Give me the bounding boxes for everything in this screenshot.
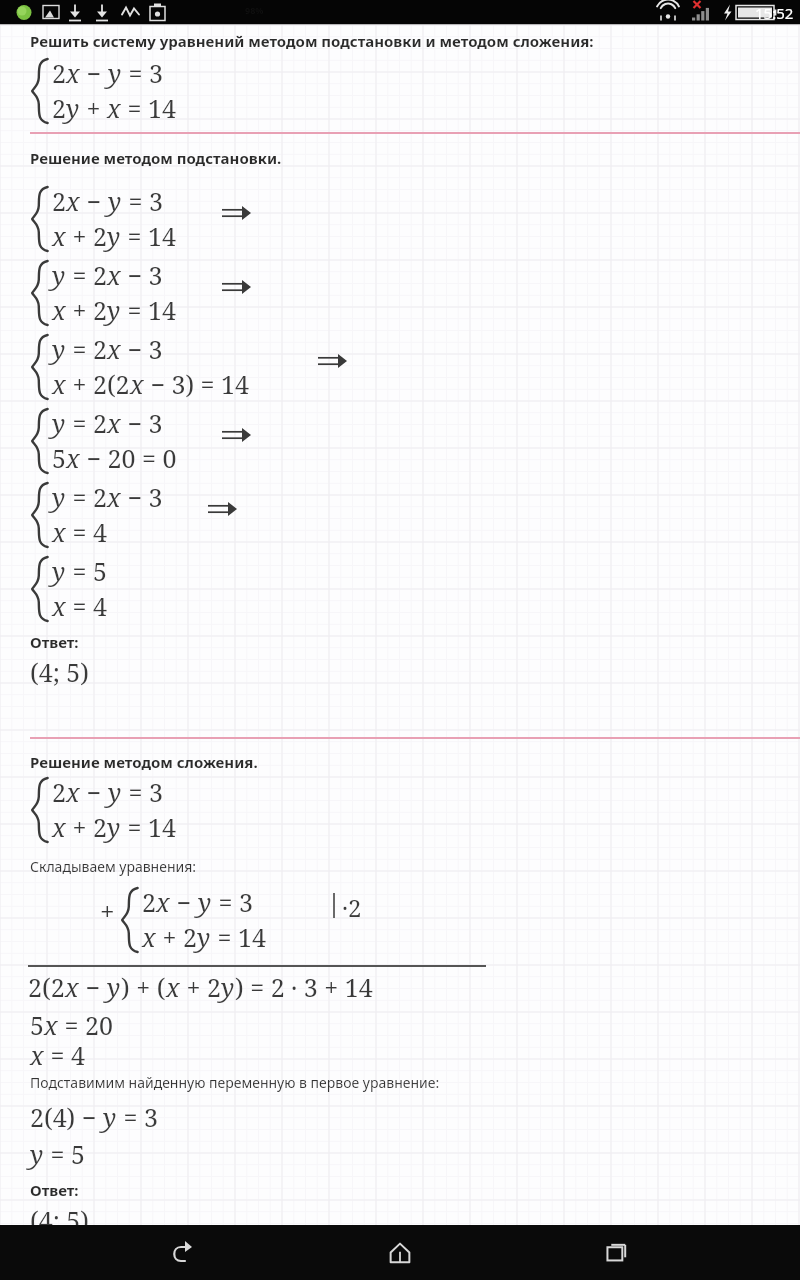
staticText: − bbox=[80, 56, 108, 90]
staticText: = 3 bbox=[122, 775, 163, 809]
staticText: y bbox=[197, 920, 211, 954]
staticText: y bbox=[107, 293, 121, 327]
staticText: Решить систему уравнений методом подстан… bbox=[30, 31, 594, 51]
staticText: y bbox=[108, 775, 122, 809]
staticText: y bbox=[52, 554, 66, 588]
staticText: + 2 bbox=[180, 970, 221, 1004]
staticText: y bbox=[108, 56, 122, 90]
staticText: y bbox=[30, 1137, 44, 1171]
staticText: + 2 bbox=[66, 293, 107, 327]
staticText: y bbox=[103, 1100, 117, 1134]
staticText: x bbox=[166, 970, 180, 1004]
staticText: − 20 = 0 bbox=[80, 441, 177, 475]
staticText: y bbox=[108, 184, 122, 218]
staticText: x bbox=[142, 920, 156, 954]
staticText: − 3 bbox=[121, 258, 163, 292]
staticText: = 20 bbox=[58, 1008, 113, 1042]
staticText: = 2 bbox=[66, 258, 107, 292]
staticText: (4; 5) bbox=[30, 1203, 89, 1237]
staticText: x bbox=[107, 332, 121, 366]
staticText: Ответ: bbox=[30, 1180, 79, 1200]
staticText: = 14 bbox=[121, 810, 176, 844]
staticText: x bbox=[52, 293, 66, 327]
staticText: − 3) = 14 bbox=[144, 367, 250, 401]
staticText: = 14 bbox=[121, 91, 176, 125]
staticText: = 2 bbox=[66, 406, 107, 440]
staticText: y bbox=[52, 480, 66, 514]
staticText: y bbox=[66, 91, 80, 125]
staticText: x bbox=[107, 406, 121, 440]
staticText: = 3 bbox=[212, 885, 253, 919]
staticText: ) + ( bbox=[121, 970, 166, 1004]
staticText: ) = 2 · 3 + 14 bbox=[235, 970, 373, 1004]
staticText: = 14 bbox=[121, 293, 176, 327]
staticText: − 3 bbox=[121, 406, 163, 440]
staticText: = 3 bbox=[117, 1100, 158, 1134]
staticText: 15:52 bbox=[755, 3, 794, 23]
staticText: y bbox=[52, 406, 66, 440]
staticText: 2(4) − bbox=[30, 1100, 103, 1134]
staticText: − bbox=[79, 970, 107, 1004]
staticText: y bbox=[107, 219, 121, 253]
staticText: = 4 bbox=[66, 589, 107, 623]
staticText: y bbox=[107, 970, 121, 1004]
staticText: (4; 5) bbox=[30, 655, 89, 689]
staticText: x bbox=[66, 441, 80, 475]
staticText: x bbox=[52, 589, 66, 623]
staticText: x bbox=[107, 258, 121, 292]
staticText: x bbox=[107, 91, 121, 125]
staticText: = 2 bbox=[66, 332, 107, 366]
staticText: = 5 bbox=[66, 554, 107, 588]
staticText: x bbox=[66, 184, 80, 218]
staticText: 5 bbox=[30, 1008, 44, 1042]
staticText: 98% bbox=[245, 4, 264, 16]
staticText: ·2 bbox=[342, 891, 362, 924]
staticText: 2(2 bbox=[28, 970, 65, 1004]
staticText: + bbox=[80, 91, 107, 125]
staticText: = 3 bbox=[122, 56, 163, 90]
staticText: + 2 bbox=[66, 810, 107, 844]
staticText: y bbox=[52, 332, 66, 366]
staticText: x bbox=[130, 367, 144, 401]
staticText: y bbox=[107, 810, 121, 844]
staticText: Складываем уравнения: bbox=[30, 857, 197, 876]
staticText: 2 bbox=[52, 775, 66, 809]
staticText: = 2 bbox=[66, 480, 107, 514]
staticText: x bbox=[52, 219, 66, 253]
staticText: − bbox=[80, 775, 108, 809]
staticText: x bbox=[66, 56, 80, 90]
staticText: Подставимим найденную переменную в перво… bbox=[30, 1073, 440, 1092]
staticText: = 5 bbox=[44, 1137, 85, 1171]
staticText: x bbox=[65, 970, 79, 1004]
staticText: x bbox=[52, 367, 66, 401]
staticText: x bbox=[156, 885, 170, 919]
staticText: Ответ: bbox=[30, 632, 79, 652]
staticText: x bbox=[44, 1008, 58, 1042]
staticText: + 2(2 bbox=[66, 367, 130, 401]
staticText: 2 bbox=[142, 885, 156, 919]
staticText: x bbox=[107, 480, 121, 514]
staticText: 2 bbox=[52, 91, 66, 125]
staticText: Решение методом подстановки. bbox=[30, 148, 282, 168]
staticText: 2 bbox=[52, 56, 66, 90]
staticText: = 4 bbox=[66, 515, 107, 549]
staticText: 5 bbox=[52, 441, 66, 475]
button[interactable]: Recent apps bbox=[582, 1225, 654, 1280]
staticText: = 14 bbox=[121, 219, 176, 253]
button[interactable]: Home bbox=[364, 1225, 436, 1280]
staticText: = 3 bbox=[122, 184, 163, 218]
button[interactable]: Back bbox=[146, 1225, 218, 1280]
staticText: + bbox=[100, 893, 115, 928]
staticText: = 4 bbox=[44, 1038, 85, 1072]
staticText: 2 bbox=[52, 184, 66, 218]
staticText: x bbox=[66, 775, 80, 809]
staticText: x bbox=[52, 810, 66, 844]
staticText: x bbox=[30, 1038, 44, 1072]
staticText: + 2 bbox=[156, 920, 197, 954]
staticText: − bbox=[170, 885, 198, 919]
staticText: y bbox=[52, 258, 66, 292]
staticText: − bbox=[80, 184, 108, 218]
staticText: x bbox=[52, 515, 66, 549]
staticText: Решение методом сложения. bbox=[30, 752, 258, 772]
staticText: = 14 bbox=[211, 920, 266, 954]
